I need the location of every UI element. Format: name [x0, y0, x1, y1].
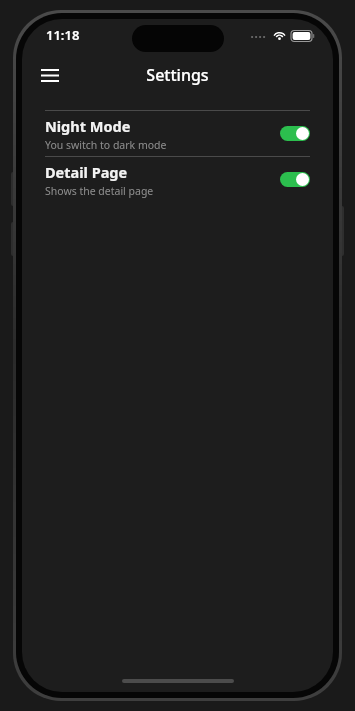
button[interactable]: Detail Page — [22, 157, 333, 202]
button[interactable]: Toggle Night Mode — [280, 126, 310, 141]
staticText: 11:18 — [46, 26, 80, 44]
button[interactable]: Night Mode — [22, 111, 333, 156]
button[interactable]: Menu — [30, 55, 70, 95]
staticText: Detail Page — [45, 162, 128, 182]
staticText: Shows the detail page — [45, 184, 154, 198]
button[interactable]: Toggle Detail Page — [280, 172, 310, 187]
staticText: Night Mode — [45, 116, 131, 136]
staticText: Settings — [146, 64, 209, 86]
staticText: You switch to dark mode — [45, 138, 167, 152]
